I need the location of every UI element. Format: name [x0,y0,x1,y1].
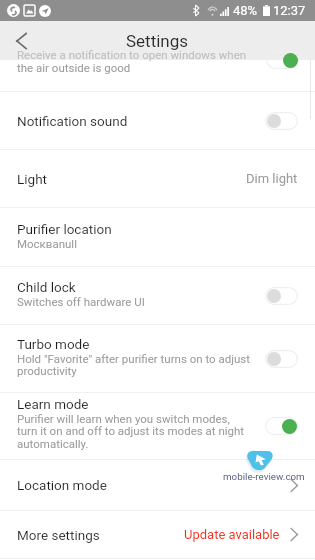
staticText: 12:37 [273,3,306,18]
button[interactable]: Child lock [0,267,315,324]
button[interactable]: Learn mode [0,393,315,459]
staticText: Notification sound [17,113,128,129]
staticText: 48% [233,3,258,18]
button[interactable]: Turbo mode [0,325,315,392]
staticText: Location mode [17,477,107,493]
staticText: Purifier location [17,221,112,237]
button[interactable]: Purifier location [0,208,315,266]
staticText: Settings [126,31,189,51]
staticText: Purifier will learn when you switch mode… [17,412,245,451]
button[interactable]: Location mode [0,460,315,510]
staticText: Update available [184,527,280,542]
button[interactable]: Back [0,21,42,60]
button[interactable]: More settings [0,511,315,558]
staticText: Learn mode [17,396,89,412]
staticText: Child lock [17,279,76,295]
button[interactable]: Light [0,150,315,207]
staticText: Light [17,171,47,187]
staticText: Switches off hardware UI [17,295,145,308]
button[interactable]: Receive a notification to open windows w… [0,60,315,91]
staticText: Turbo mode [17,336,90,352]
staticText: Receive a notification to open windows w… [17,48,247,61]
staticText: More settings [17,527,100,543]
staticText: the air outside is good [17,61,131,74]
staticText: Москваnull [17,237,77,250]
staticText: Hold "Favorite" after purifier turns on … [17,352,251,378]
staticText: Dim light [246,171,298,186]
staticText: mobile-review.com [223,471,305,482]
button[interactable]: Notification sound [0,92,315,149]
